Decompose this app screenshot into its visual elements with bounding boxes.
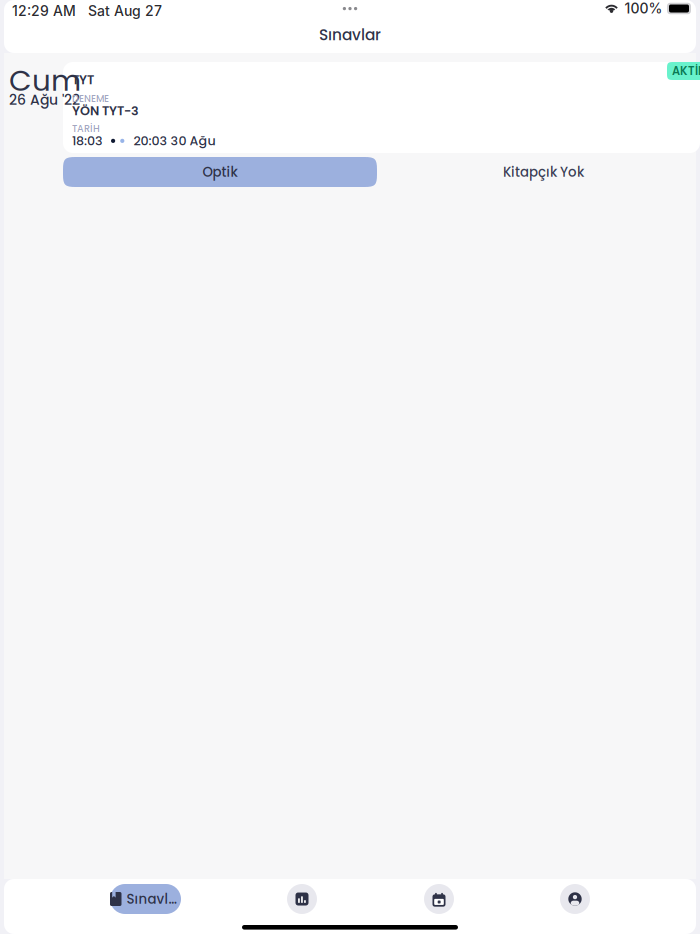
staticText: 12:29 AM Sat Aug 27	[12, 2, 162, 19]
staticText: Sınavlar	[319, 24, 381, 46]
button[interactable]: Takvim	[424, 884, 454, 914]
staticText: Cum	[9, 60, 81, 101]
staticText: Optik	[202, 163, 237, 181]
staticText: 20:03 30 Ağu	[133, 132, 215, 150]
staticText: TARİH	[72, 122, 100, 135]
button[interactable]: Sınavlar	[110, 884, 181, 914]
staticText: TYT	[72, 71, 94, 89]
button[interactable]: İstatistikler	[287, 884, 317, 914]
staticText: Sınavlar	[126, 890, 181, 908]
staticText: YÖN TYT-3	[72, 102, 139, 120]
staticText: 18:03	[72, 132, 103, 150]
staticText: Kitapçık Yok	[503, 163, 584, 181]
staticText: 26 Ağu '22	[9, 90, 80, 110]
staticText: DENEME	[72, 92, 109, 105]
staticText: 100%	[624, 0, 662, 17]
button[interactable]: Optik	[63, 157, 377, 187]
button[interactable]: Profil	[560, 884, 590, 914]
button[interactable]: Kitapçık Yok	[389, 157, 698, 187]
staticText: AKTİF	[672, 63, 700, 79]
